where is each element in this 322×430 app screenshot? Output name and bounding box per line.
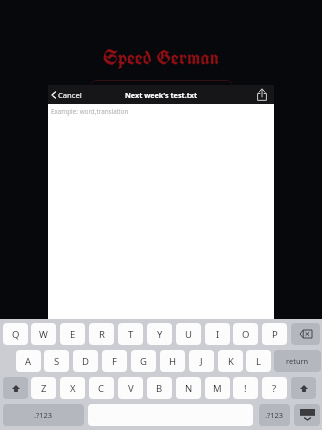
button[interactable]: C	[89, 377, 114, 399]
staticText: I	[216, 328, 220, 341]
button[interactable]: G	[131, 350, 156, 372]
staticText: R	[99, 328, 105, 341]
button[interactable]: Share	[254, 87, 269, 102]
button[interactable]: W	[31, 323, 56, 345]
staticText: Q	[12, 328, 20, 341]
staticText: S	[54, 355, 60, 368]
staticText: J	[200, 355, 203, 368]
button[interactable]: P	[262, 323, 287, 345]
staticText: N	[185, 382, 193, 395]
staticText: Next week's test.txt	[125, 90, 198, 100]
button[interactable]: E	[60, 323, 85, 345]
staticText: Z	[41, 382, 47, 395]
staticText: return	[286, 356, 309, 366]
staticText: P	[272, 328, 278, 341]
button[interactable]: Y	[147, 323, 172, 345]
button[interactable]: B	[147, 377, 172, 399]
button[interactable]: N	[176, 377, 201, 399]
staticText: H	[169, 355, 177, 368]
staticText: Example: word,translation	[51, 107, 129, 116]
button[interactable]: O	[233, 323, 258, 345]
staticText: A	[25, 355, 32, 368]
staticText: X	[70, 382, 76, 395]
button[interactable]: Backspace	[291, 323, 320, 345]
button[interactable]: S	[44, 350, 69, 372]
button[interactable]: A	[16, 350, 41, 372]
staticText: W	[39, 328, 48, 341]
button[interactable]: R	[89, 323, 114, 345]
staticText: Y	[157, 328, 163, 341]
staticText: Add words	[136, 88, 187, 102]
staticText: ?	[272, 382, 277, 395]
staticText: .?123	[265, 410, 284, 420]
staticText: .?123	[34, 410, 53, 420]
button[interactable]: I	[205, 323, 230, 345]
button[interactable]: !	[233, 377, 258, 399]
staticText: Speed German	[103, 44, 219, 71]
staticText: T	[128, 328, 134, 341]
staticText: G	[140, 355, 147, 368]
button[interactable]: H	[160, 350, 185, 372]
button[interactable]: V	[118, 377, 143, 399]
staticText: F	[112, 355, 117, 368]
button[interactable]: D	[73, 350, 98, 372]
staticText: K	[228, 355, 234, 368]
button[interactable]: K	[218, 350, 243, 372]
staticText: C	[98, 382, 105, 395]
button[interactable]: U	[176, 323, 201, 345]
button[interactable]: Add words	[90, 80, 233, 110]
staticText: D	[82, 355, 89, 368]
button[interactable]: .?123	[259, 404, 290, 426]
button[interactable]: ?	[262, 377, 287, 399]
button[interactable]: .?123	[3, 404, 84, 426]
button[interactable]: return	[274, 350, 321, 372]
button[interactable]: J	[189, 350, 214, 372]
staticText: E	[70, 328, 76, 341]
button[interactable]: Hide keyboard	[294, 404, 320, 426]
staticText: M	[213, 382, 222, 395]
staticText: Cancel	[58, 90, 82, 100]
staticText: O	[242, 328, 250, 341]
button[interactable]: T	[118, 323, 143, 345]
button[interactable]: Shift	[3, 377, 28, 399]
button[interactable]: X	[60, 377, 85, 399]
button[interactable]: Q	[3, 323, 28, 345]
button[interactable]: F	[102, 350, 127, 372]
staticText: V	[128, 382, 134, 395]
staticText: U	[185, 328, 192, 341]
button[interactable]: Cancel	[50, 90, 82, 100]
button[interactable]: Z	[31, 377, 56, 399]
staticText: !	[244, 382, 247, 395]
button[interactable]: L	[246, 350, 271, 372]
staticText: L	[256, 355, 261, 368]
button[interactable]: M	[205, 377, 230, 399]
button[interactable]: Shift	[291, 377, 316, 399]
staticText: B	[156, 382, 163, 395]
